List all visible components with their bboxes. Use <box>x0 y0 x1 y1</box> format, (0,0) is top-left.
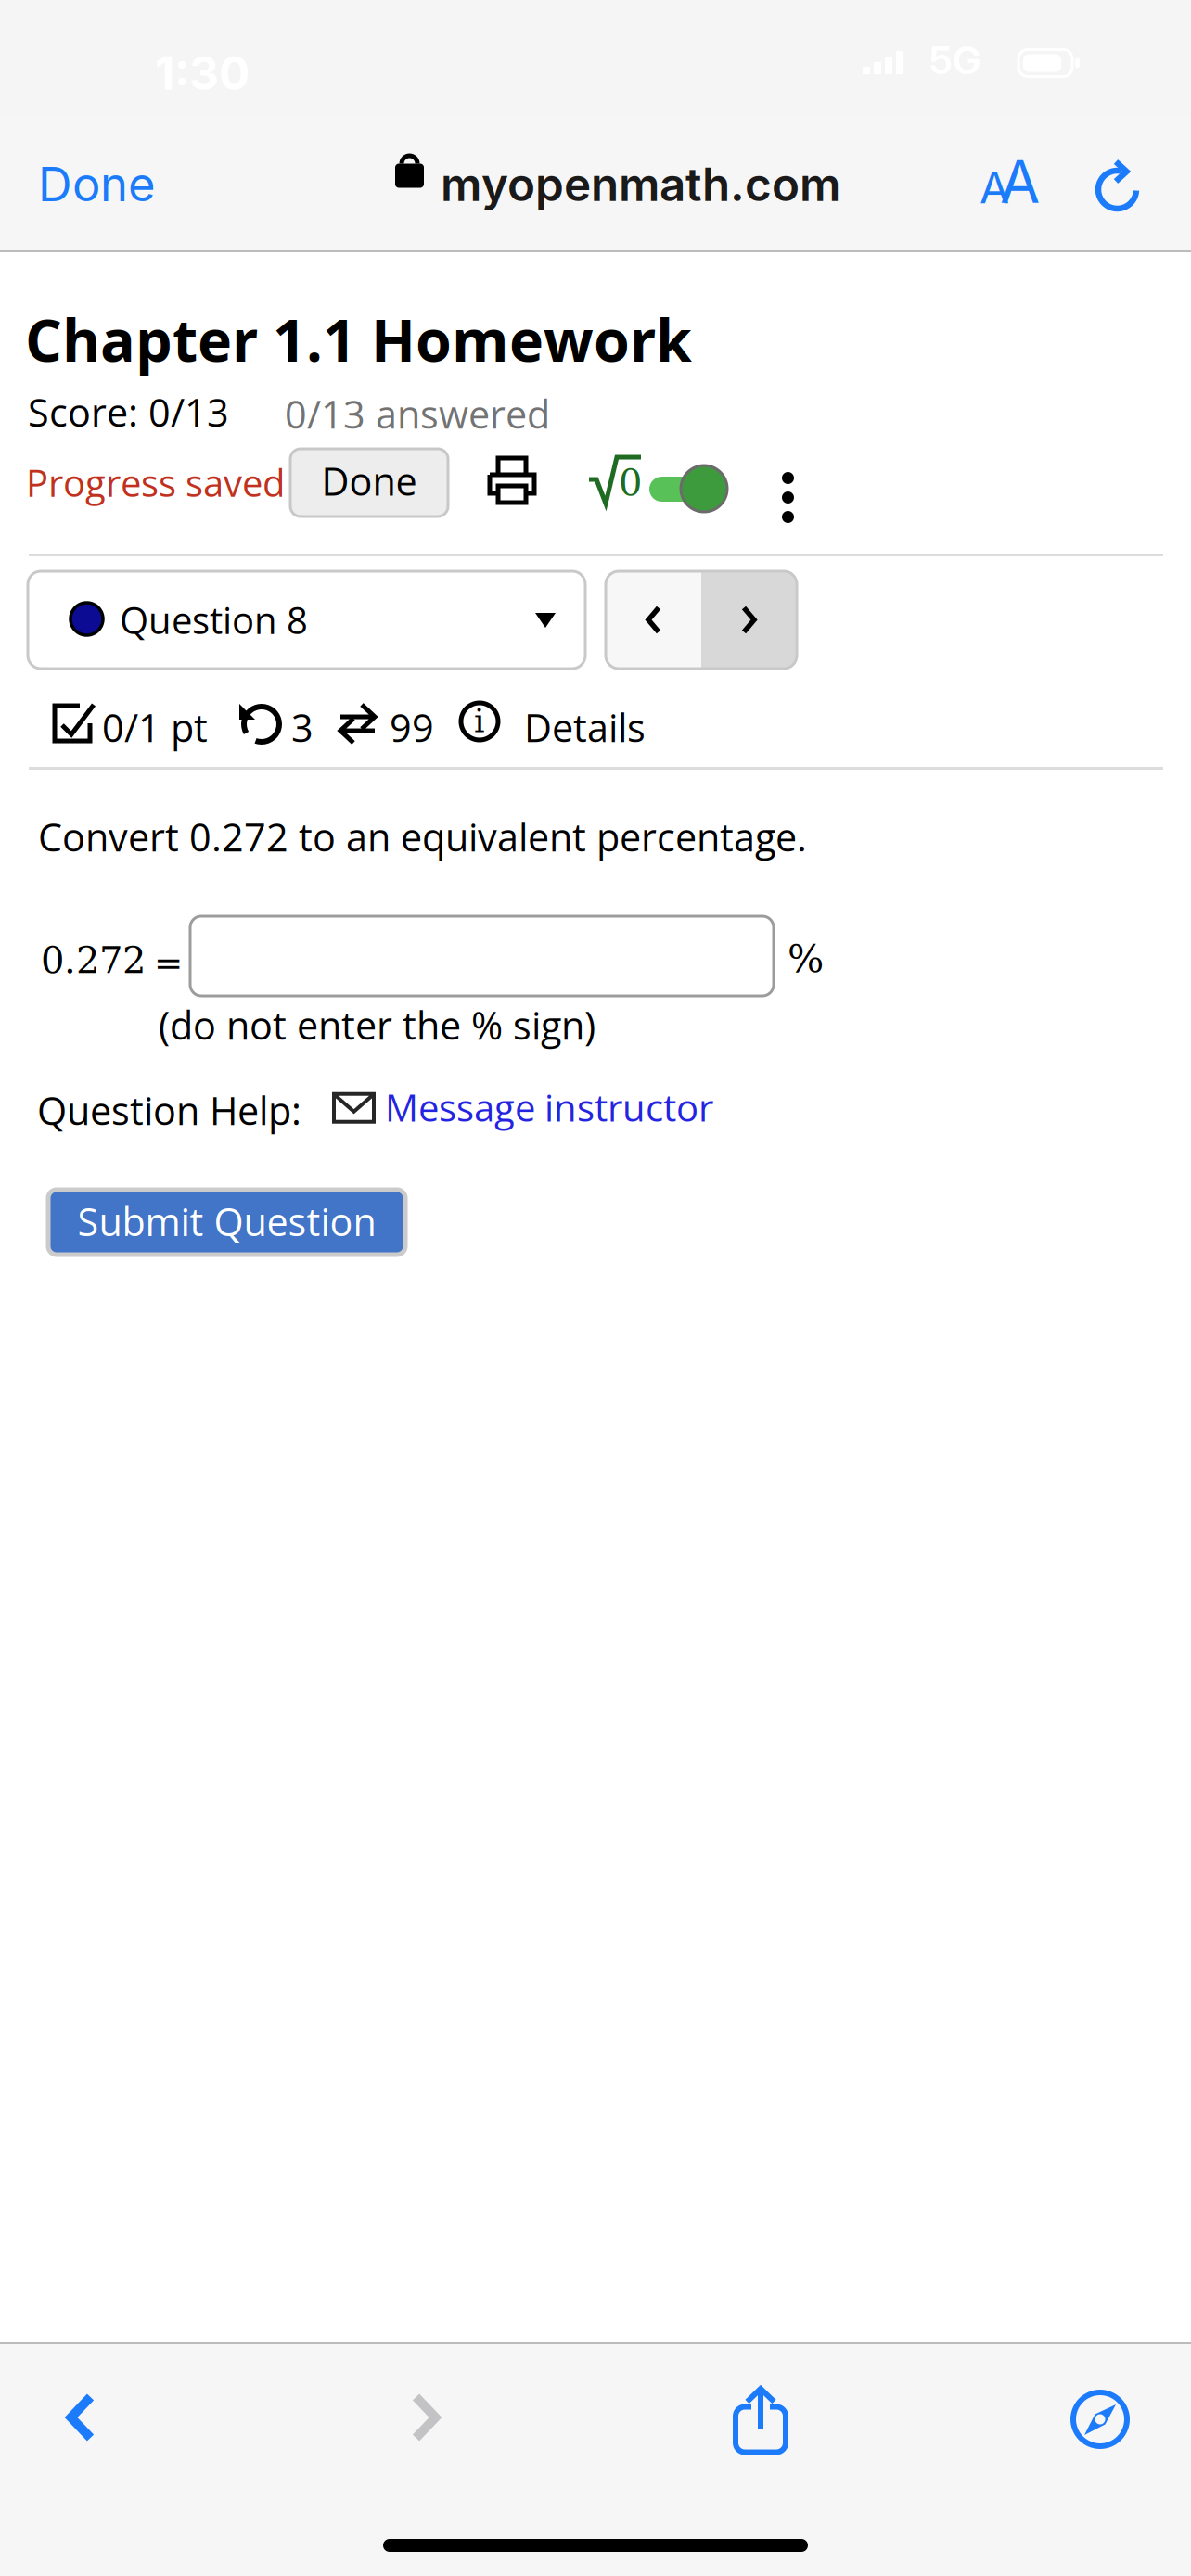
staticText: Question 8 <box>120 594 308 645</box>
staticText: 0/13 answered <box>285 388 550 440</box>
button[interactable]: Forward <box>346 2348 506 2487</box>
staticText: = <box>154 943 183 983</box>
button[interactable]: Done <box>290 449 448 516</box>
staticText: % <box>788 937 824 981</box>
button[interactable]: Message instructor <box>301 1080 687 1134</box>
button[interactable]: Submit Question <box>48 1190 405 1255</box>
button[interactable]: Question 8 <box>28 571 585 669</box>
button[interactable]: More options <box>782 453 794 504</box>
staticText: i <box>474 701 485 740</box>
staticText: 5G <box>929 37 980 83</box>
staticText: Progress saved <box>26 457 285 508</box>
staticText: 99 <box>390 701 434 753</box>
staticText: 0/1 pt <box>102 701 208 753</box>
button[interactable]: Toggle math palette <box>648 465 728 513</box>
staticText: Message instructor <box>385 1082 713 1132</box>
staticText: Score: 0/13 <box>28 386 229 438</box>
button[interactable]: Reload <box>1078 115 1191 252</box>
button[interactable]: Print <box>487 455 537 505</box>
staticText: Question Help: <box>37 1084 301 1136</box>
staticText: Submit Question <box>77 1195 376 1247</box>
button[interactable]: Previous question <box>606 571 701 669</box>
button[interactable]: Done <box>0 115 186 252</box>
staticText: Done <box>38 156 156 213</box>
staticText: Details <box>524 701 646 753</box>
staticText: Chapter 1.1 Homework <box>25 300 692 379</box>
staticText: 1:30 <box>155 45 250 101</box>
staticText: 0 <box>619 461 642 504</box>
staticText: A <box>1000 147 1040 217</box>
staticText: 0.272 <box>41 938 146 982</box>
staticText: myopenmath.com <box>441 157 840 212</box>
button[interactable]: Page settings <box>974 115 1113 252</box>
button[interactable]: Math entry <box>587 454 641 505</box>
button[interactable]: Next question <box>701 571 797 669</box>
staticText: A <box>980 161 1009 214</box>
staticText: (do not enter the % sign) <box>159 999 595 1051</box>
staticText: Done <box>321 455 417 507</box>
button[interactable]: Share <box>681 2351 840 2490</box>
staticText: 3 <box>291 701 314 753</box>
staticText: Convert 0.272 to an equivalent percentag… <box>38 810 807 863</box>
button[interactable]: Back <box>1 2348 160 2487</box>
button[interactable]: Bookmarks <box>1020 2350 1180 2489</box>
